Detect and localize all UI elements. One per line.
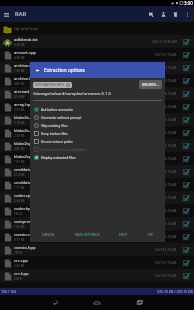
button[interactable]: Extract here [145,8,157,20]
staticText: 2.38 KB [14,134,25,138]
button[interactable]: array.hpp [0,100,194,113]
button[interactable]: blake2s.hpp [0,126,194,139]
button[interactable]: Display extracted files [30,153,165,161]
button[interactable]: adbknob.txt [0,35,194,48]
button[interactable]: coder.cpp [0,191,194,204]
button[interactable]: Keep broken files [30,129,165,137]
button[interactable]: Overwrite without prompt [30,113,165,121]
staticText: BROWSE... [142,82,159,87]
button[interactable]: Extract archives to subfolders [30,145,165,153]
staticText: adbknob.txt [14,37,38,43]
staticText: Ask before overwrite [41,107,74,111]
staticText: consio.hpp [14,245,36,251]
staticText: blake2sp.cpp [14,141,40,147]
staticText: 104 / 104 [1,289,17,294]
staticText: 5/6/14 5:15 AM [155,157,177,161]
staticText: Display extracted files [41,155,76,159]
staticText: 5/6/14 5:15 AM [155,79,177,83]
button[interactable]: blake2s.cpp [0,113,194,126]
staticText: 5/6/14 5:15 AM [155,170,177,174]
staticText: 5/6/14 5:15 AM [155,248,177,252]
button[interactable]: archive.hpp [0,74,194,87]
staticText: compress.hpp [14,219,42,225]
staticText: 5/6/14 5:15 AM [155,144,177,148]
staticText: 8.77 KB [14,238,25,242]
button[interactable]: consio.hpp [0,243,194,256]
staticText: Keep broken files [41,131,68,135]
staticText: HELP [119,232,128,237]
staticText: arcread.cpp [14,89,38,95]
staticText: 339 B [14,277,22,281]
staticText: DESTINATION PATH [35,83,65,87]
button[interactable]: crc.hpp [0,269,194,282]
button[interactable]: blake2sp.cpp [0,139,194,152]
staticText: Extract archives to subfolders [41,147,87,151]
staticText: 3.92 KB [14,264,25,268]
button[interactable]: DESTINATION PATH [33,82,72,88]
staticText: 790 B [14,251,22,255]
staticText: 2.64 KB [14,199,25,203]
button[interactable]: consio.cpp [0,230,194,243]
button[interactable]: Ask before overwrite [30,105,165,113]
button[interactable]: Up one level [0,22,194,35]
staticText: coder.cpp [14,193,33,199]
button[interactable]: Recent apps [126,295,152,310]
staticText: SAVE SETTINGS [75,232,100,237]
button[interactable]: arcread.cpp [0,87,194,100]
staticText: Extraction options [44,67,85,74]
button[interactable]: CANCEL [38,230,59,239]
button[interactable]: Back [30,62,165,78]
staticText: cmddata.hpp [14,180,41,186]
staticText: 5/6/14 5:15 AM [155,274,177,278]
button[interactable]: blake2sp.hpp [0,152,194,165]
staticText: 5/6/14 5:15 AM [155,131,177,135]
button[interactable]: cmddata.hpp [0,178,194,191]
staticText: /storage/sdcard/samples/unrarsrc-5.1.5 [33,91,112,97]
staticText: 335.15 KB / 335.15 KB [157,289,193,294]
staticText: arcsort.cpp [14,50,37,56]
button[interactable]: Back [42,295,68,310]
staticText: coder.hpp [14,206,34,212]
staticText: blake2sp.hpp [14,154,41,160]
staticText: Overwrite without prompt [41,115,82,119]
staticText: 1.81 KB [14,160,25,164]
staticText: 4/26/13 10:55 AM [152,40,177,44]
staticText: 5/6/14 5:15 AM [155,261,177,265]
button[interactable]: Delete [169,8,181,20]
button[interactable]: OK [144,230,157,239]
staticText: Up one level [14,26,39,32]
other: Back [33,66,41,74]
staticText: 4.85 KB [14,82,25,86]
button[interactable]: Do not extract paths [30,137,165,145]
button[interactable]: SAVE SETTINGS [71,230,104,239]
button[interactable]: BROWSE... [139,80,162,89]
staticText: 5/6/14 5:15 AM [155,196,177,200]
button[interactable]: crc.cpp [0,256,194,269]
staticText: 31.4 KB [14,173,25,177]
button[interactable]: Home [84,295,110,310]
staticText: 2.99 KB [14,108,25,112]
button[interactable]: More options [181,8,193,20]
button[interactable]: arcsort.cpp [0,48,194,61]
button[interactable]: Navigation menu [1,9,12,20]
button[interactable]: Extract to [157,8,169,20]
staticText: crc.cpp [14,258,28,264]
staticText: crc.hpp [14,271,29,277]
button[interactable]: compress.hpp [0,217,194,230]
staticText: OK [148,232,153,237]
button[interactable]: HELP [115,230,132,239]
staticText: CANCEL [42,232,55,237]
staticText: 3:00 [184,0,193,6]
button[interactable]: cmddata.cpp [0,165,194,178]
button[interactable]: Skip existing files [30,121,165,129]
staticText: 596 B [14,212,22,216]
staticText: 5.18 KB [14,121,25,125]
staticText: 41.4 KB [14,95,25,99]
staticText: array.hpp [14,102,33,108]
button[interactable]: archive.cpp [0,61,194,74]
staticText: 4.98 KB [14,56,25,60]
staticText: 5/6/14 5:15 AM [155,235,177,239]
staticText: 7.58 KB [14,69,25,73]
staticText: consio.cpp [14,232,36,238]
button[interactable]: coder.hpp [0,204,194,217]
